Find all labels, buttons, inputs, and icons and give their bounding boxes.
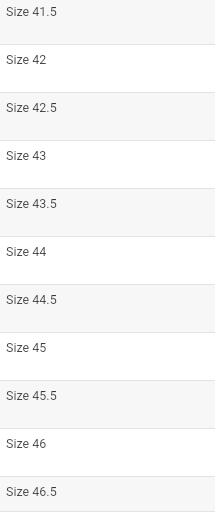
staticText: Size 42 bbox=[6, 52, 47, 67]
button[interactable]: Size 45 bbox=[0, 333, 215, 381]
staticText: Size 44.5 bbox=[6, 292, 57, 307]
staticText: Size 45 bbox=[6, 340, 47, 355]
staticText: Size 44 bbox=[6, 244, 47, 259]
staticText: Size 41.5 bbox=[6, 4, 57, 19]
button[interactable]: Size 46.5 bbox=[0, 477, 215, 512]
button[interactable]: Size 42 bbox=[0, 45, 215, 93]
button[interactable]: Size 45.5 bbox=[0, 381, 215, 429]
staticText: Size 46 bbox=[6, 436, 47, 451]
staticText: Size 43.5 bbox=[6, 196, 57, 211]
staticText: Size 42.5 bbox=[6, 100, 57, 115]
button[interactable]: Size 43.5 bbox=[0, 189, 215, 237]
button[interactable]: Size 41.5 bbox=[0, 0, 215, 45]
button[interactable]: Size 42.5 bbox=[0, 93, 215, 141]
staticText: Size 45.5 bbox=[6, 388, 57, 403]
staticText: Size 46.5 bbox=[6, 484, 57, 499]
staticText: Size 43 bbox=[6, 148, 47, 163]
button[interactable]: Size 44 bbox=[0, 237, 215, 285]
button[interactable]: Size 43 bbox=[0, 141, 215, 189]
button[interactable]: Size 44.5 bbox=[0, 285, 215, 333]
button[interactable]: Size 46 bbox=[0, 429, 215, 477]
